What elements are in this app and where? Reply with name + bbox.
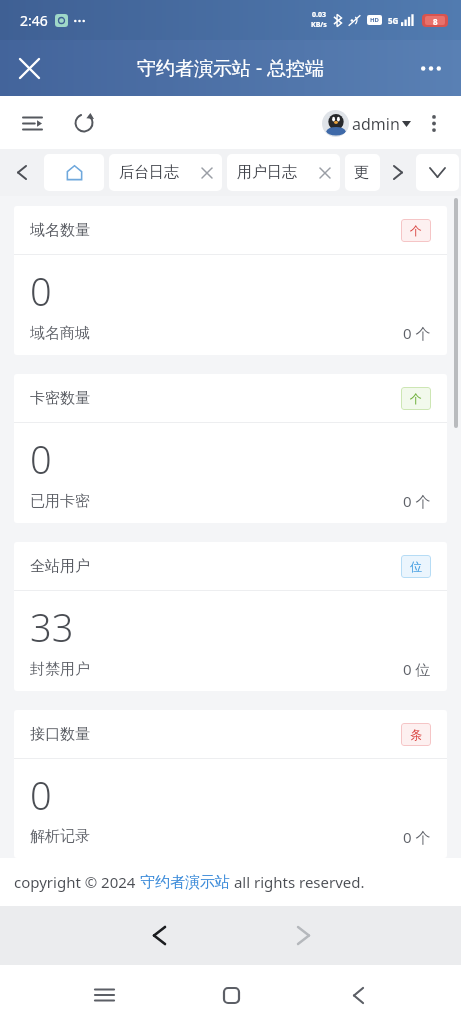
staticText: 8 xyxy=(433,16,438,25)
staticText: 用户日志 xyxy=(237,163,297,182)
staticText: 后台日志 xyxy=(119,163,179,182)
button[interactable]: More options xyxy=(409,46,453,90)
staticText: 0 个 xyxy=(403,491,431,511)
button[interactable]: 更 xyxy=(345,154,380,191)
staticText: admin xyxy=(352,113,400,135)
button[interactable]: Home tab xyxy=(44,154,104,191)
staticText: copyright © 2024 xyxy=(14,872,140,892)
button[interactable]: 卡密数量 xyxy=(14,374,447,523)
button[interactable]: Back xyxy=(330,967,386,1023)
staticText: 域名商城 xyxy=(30,324,90,343)
staticText: 0 xyxy=(30,769,52,821)
button[interactable]: More xyxy=(415,104,453,142)
staticText: 0 个 xyxy=(403,323,431,343)
staticText: 0 位 xyxy=(403,659,431,679)
button[interactable]: 守约者演示站 xyxy=(140,873,230,892)
staticText: 条 xyxy=(410,727,422,742)
staticText: 解析记录 xyxy=(30,827,90,846)
button[interactable]: Recents xyxy=(76,967,132,1023)
button[interactable]: Next tab xyxy=(380,149,416,196)
button[interactable]: 用户日志 xyxy=(227,154,340,191)
button[interactable]: Forward xyxy=(267,906,339,965)
button[interactable]: admin xyxy=(318,106,415,141)
staticText: all rights reserved. xyxy=(230,872,365,892)
staticText: 更 xyxy=(354,163,369,182)
staticText: 0 xyxy=(30,265,52,317)
staticText: 接口数量 xyxy=(30,725,90,744)
button[interactable]: Refresh xyxy=(64,103,104,143)
button[interactable]: 接口数量 xyxy=(14,710,447,858)
button[interactable]: Home xyxy=(203,967,259,1023)
button[interactable]: 后台日志 xyxy=(109,154,222,191)
staticText: 2:46 xyxy=(20,11,48,30)
staticText: 0 个 xyxy=(403,827,431,846)
staticText: 已用卡密 xyxy=(30,492,90,511)
staticText: 33 xyxy=(30,601,74,653)
staticText: 0.03 xyxy=(312,10,326,20)
staticText: 全站用户 xyxy=(30,557,90,576)
button[interactable]: Close xyxy=(8,47,50,89)
staticText: KB/s xyxy=(311,20,327,30)
staticText: 卡密数量 xyxy=(30,389,90,408)
staticText: 个 xyxy=(410,223,422,238)
staticText: 5G xyxy=(388,15,399,26)
staticText: HD xyxy=(370,16,379,24)
staticText: 0 xyxy=(30,433,52,485)
staticText: 域名数量 xyxy=(30,221,90,240)
button[interactable]: Back xyxy=(123,906,195,965)
button[interactable]: Previous tab xyxy=(0,149,44,196)
button[interactable]: Menu xyxy=(12,103,52,143)
button[interactable]: Show all tabs xyxy=(416,154,459,191)
staticText: 守约者演示站 - 总控端 xyxy=(137,55,324,81)
staticText: 个 xyxy=(410,391,422,406)
button[interactable]: 全站用户 xyxy=(14,542,447,691)
staticText: 封禁用户 xyxy=(30,660,90,679)
button[interactable]: 域名数量 xyxy=(14,206,447,355)
staticText: 位 xyxy=(410,559,422,574)
